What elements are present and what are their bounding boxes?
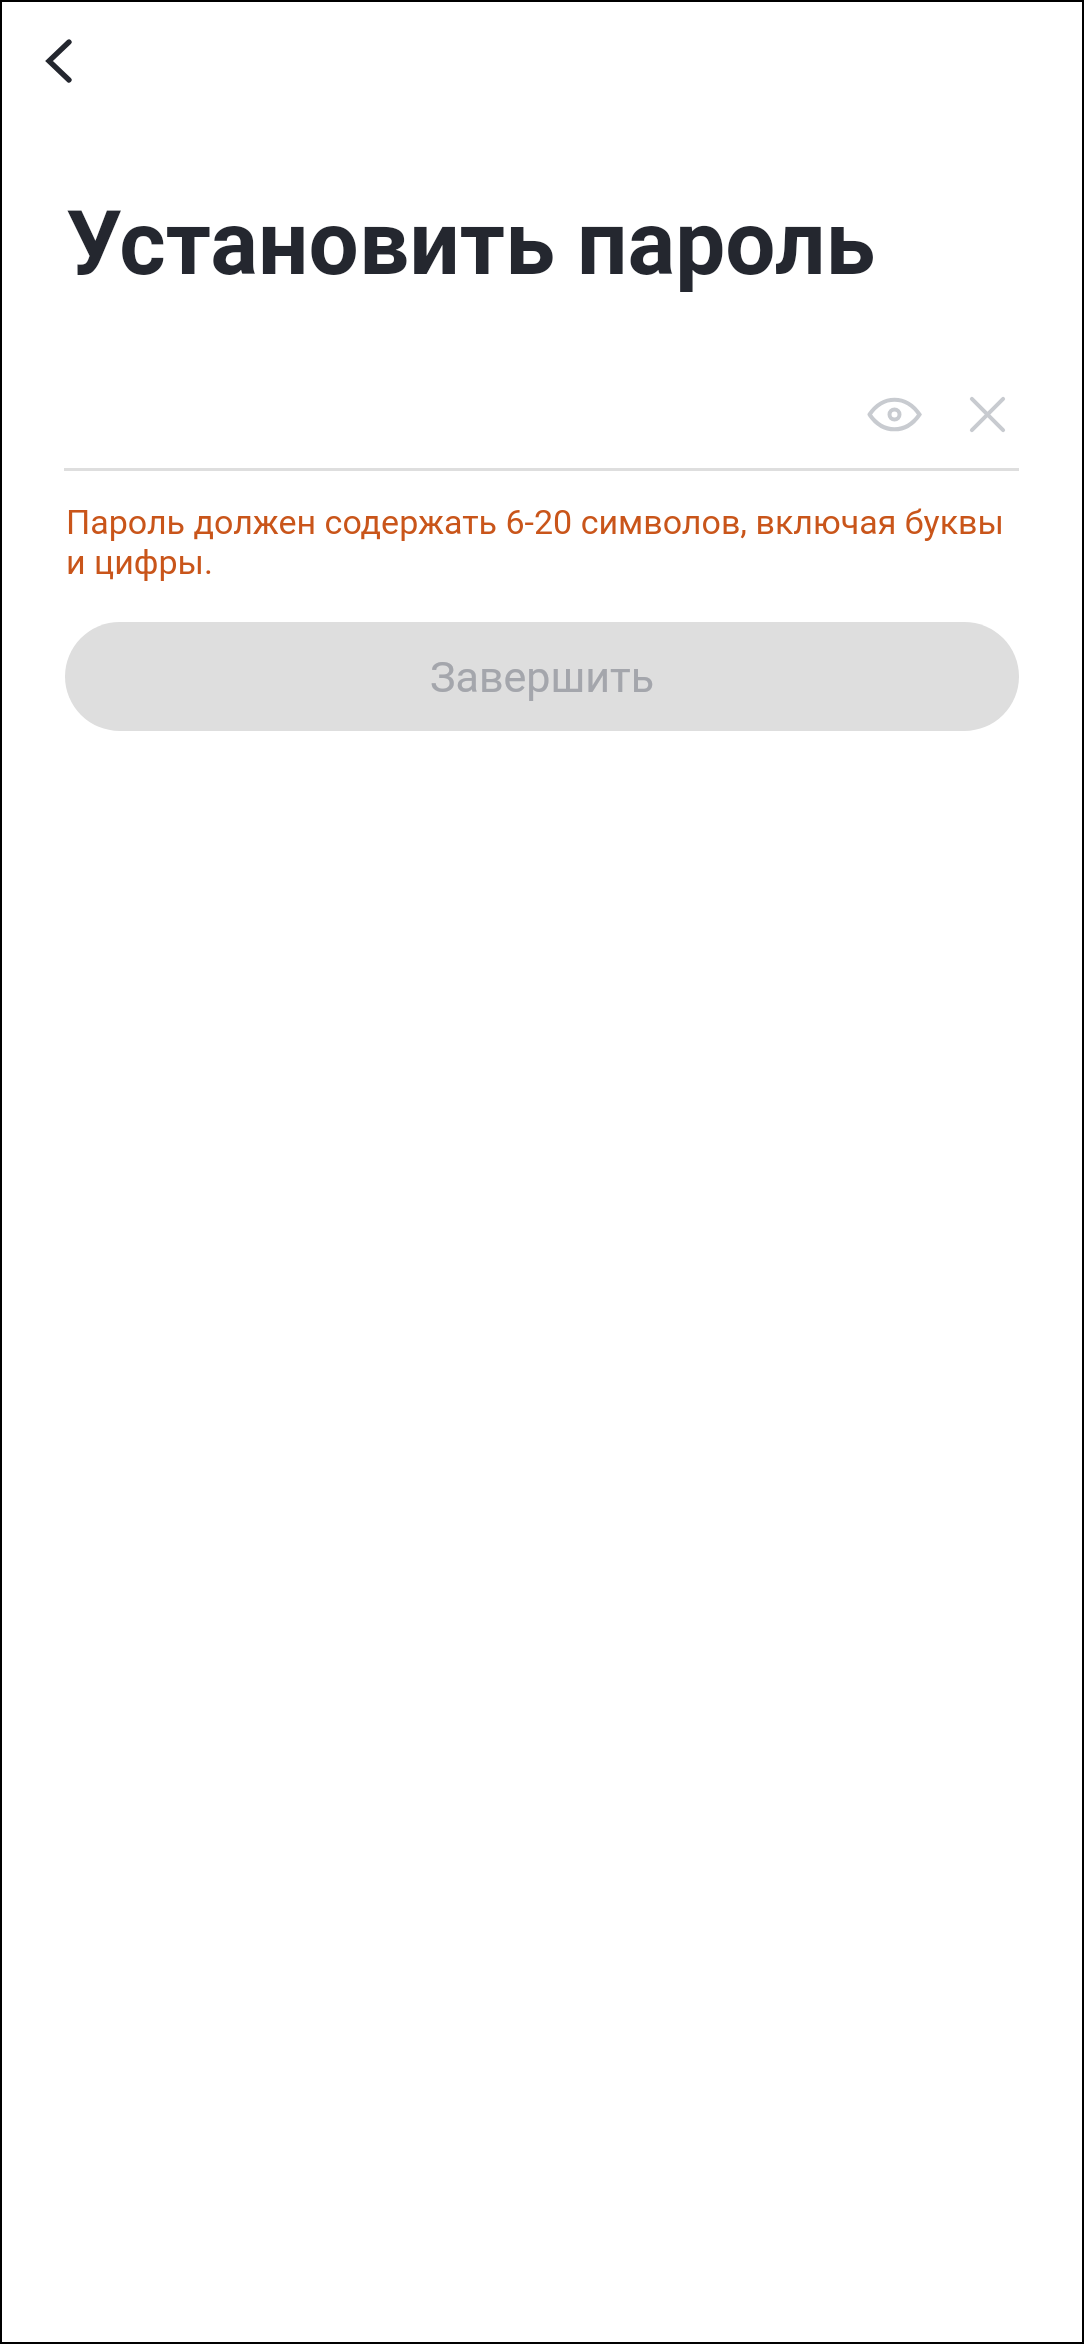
staticText: Пароль должен содержать 6-20 символов, в… (66, 502, 1066, 582)
button[interactable]: Back (7, 9, 111, 113)
button[interactable]: Clear (936, 363, 1039, 466)
button[interactable]: Show password (843, 363, 946, 466)
button[interactable]: Завершить (65, 622, 1019, 731)
staticText: Установить пароль (66, 191, 876, 295)
staticText: Завершить (430, 652, 655, 702)
